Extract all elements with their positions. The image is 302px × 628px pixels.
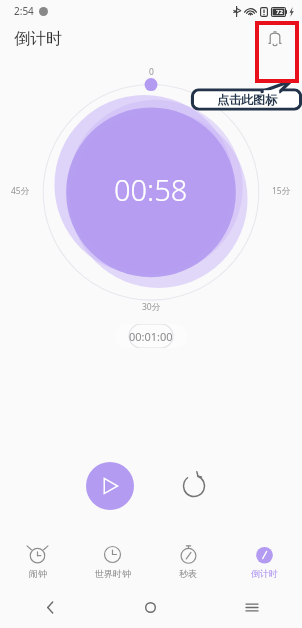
- button[interactable]: 闹钟: [0, 538, 75, 586]
- button[interactable]: 世界时钟: [75, 538, 150, 586]
- button[interactable]: 秒表: [150, 538, 226, 586]
- staticText: 15分: [272, 185, 291, 197]
- staticText: 2:54: [14, 4, 34, 18]
- staticText: 倒计时: [251, 568, 278, 579]
- button[interactable]: Back: [0, 586, 100, 628]
- button[interactable]: Start: [86, 462, 134, 510]
- button[interactable]: Home: [100, 586, 201, 628]
- staticText: 45分: [11, 185, 30, 197]
- button[interactable]: Ringtone: [260, 24, 290, 54]
- button[interactable]: 倒计时: [226, 538, 302, 586]
- staticText: 0: [149, 66, 154, 78]
- staticText: 秒表: [179, 568, 197, 579]
- staticText: 00:01:00: [129, 329, 173, 344]
- staticText: 72: [276, 8, 283, 16]
- staticText: 倒计时: [14, 29, 62, 49]
- button[interactable]: Recent apps: [201, 586, 302, 628]
- staticText: 30分: [142, 301, 161, 313]
- staticText: 00:58: [114, 170, 188, 209]
- staticText: 闹钟: [29, 568, 47, 579]
- button[interactable]: 00:01:00: [115, 324, 187, 348]
- button[interactable]: Reset: [172, 464, 216, 508]
- staticText: 点击此图标: [217, 92, 277, 107]
- staticText: 世界时钟: [95, 568, 131, 579]
